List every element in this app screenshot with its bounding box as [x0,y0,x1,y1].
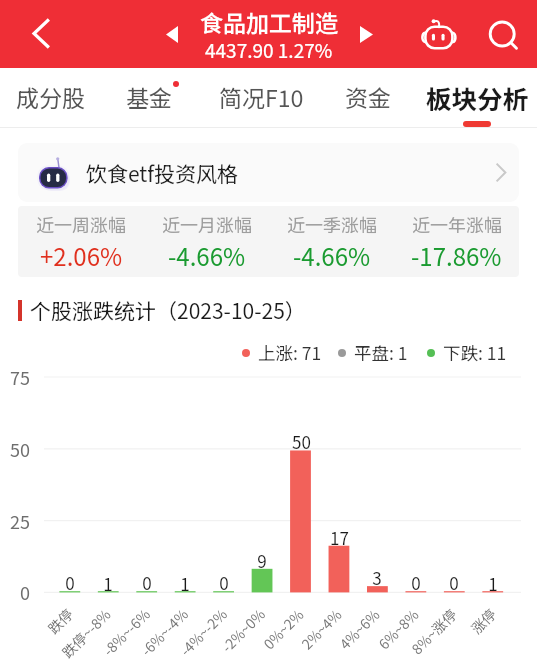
staticText: -2%~0% [217,604,269,656]
staticText: 板块分析 [426,79,529,116]
staticText: 3 [372,565,382,590]
staticText: 50 [10,436,30,462]
staticText: 近一年涨幅 [412,211,502,237]
button[interactable]: 上涨: 71 [242,340,322,365]
staticText: 0 [20,579,30,605]
staticText: 50 [292,429,311,454]
staticText: 0 [65,570,75,595]
staticText: 9 [257,548,267,573]
staticText: 近一季涨幅 [287,211,377,237]
staticText: 25 [10,508,30,534]
staticText: 近一周涨幅 [36,211,126,237]
staticText: 简况F10 [219,80,304,113]
staticText: 下跌: 11 [443,340,507,365]
staticText: -4%~-2% [175,604,231,659]
button[interactable]: AI assistant [412,0,466,68]
staticText: -4.66% [168,238,246,273]
staticText: 0 [449,570,459,595]
staticText: 4437.90 1.27% [205,36,333,64]
staticText: 17 [330,525,349,550]
staticText: 跌停 [43,604,77,638]
staticText: 6%~8% [374,604,423,653]
staticText: -17.86% [411,238,502,273]
staticText: +2.06% [40,238,123,273]
button[interactable]: 板块分析 [415,68,537,128]
button[interactable]: 简况F10 [199,68,323,128]
staticText: 饮食etf投资风格 [86,158,239,188]
staticText: 资金 [345,80,391,113]
staticText: 食品加工制造 [200,5,338,38]
staticText: 近一月涨幅 [162,211,252,237]
button[interactable]: 基金 [87,68,211,128]
staticText: -8%~-6% [98,604,154,659]
staticText: 2%~4% [297,604,346,653]
staticText: 涨停 [466,604,500,638]
button[interactable]: 平盘: 1 [338,340,408,365]
staticText: 基金 [126,80,172,113]
button[interactable]: 饮食etf投资风格 [18,143,519,202]
button[interactable]: 成分股 [0,68,112,128]
staticText: -6%~-4% [136,604,192,659]
staticText: 上涨: 71 [258,340,322,365]
staticText: 跌停~-8% [57,604,115,659]
button[interactable]: Search [474,0,530,68]
staticText: 个股涨跌统计（2023-10-25） [30,295,306,325]
staticText: 0 [411,570,421,595]
button[interactable]: 资金 [306,68,430,128]
staticText: 4%~6% [335,604,384,653]
staticText: 1 [488,571,498,596]
staticText: -4.66% [293,238,371,273]
staticText: 成分股 [16,80,85,113]
staticText: 1 [103,571,113,596]
staticText: 75 [10,364,30,390]
staticText: 0 [142,570,152,595]
staticText: 1 [180,571,190,596]
staticText: 8%~涨停 [407,604,461,658]
staticText: 0 [219,570,229,595]
staticText: 0%~2% [259,604,308,653]
staticText: 平盘: 1 [354,340,408,365]
button[interactable]: Back [4,0,72,68]
button[interactable]: 下跌: 11 [427,340,507,365]
